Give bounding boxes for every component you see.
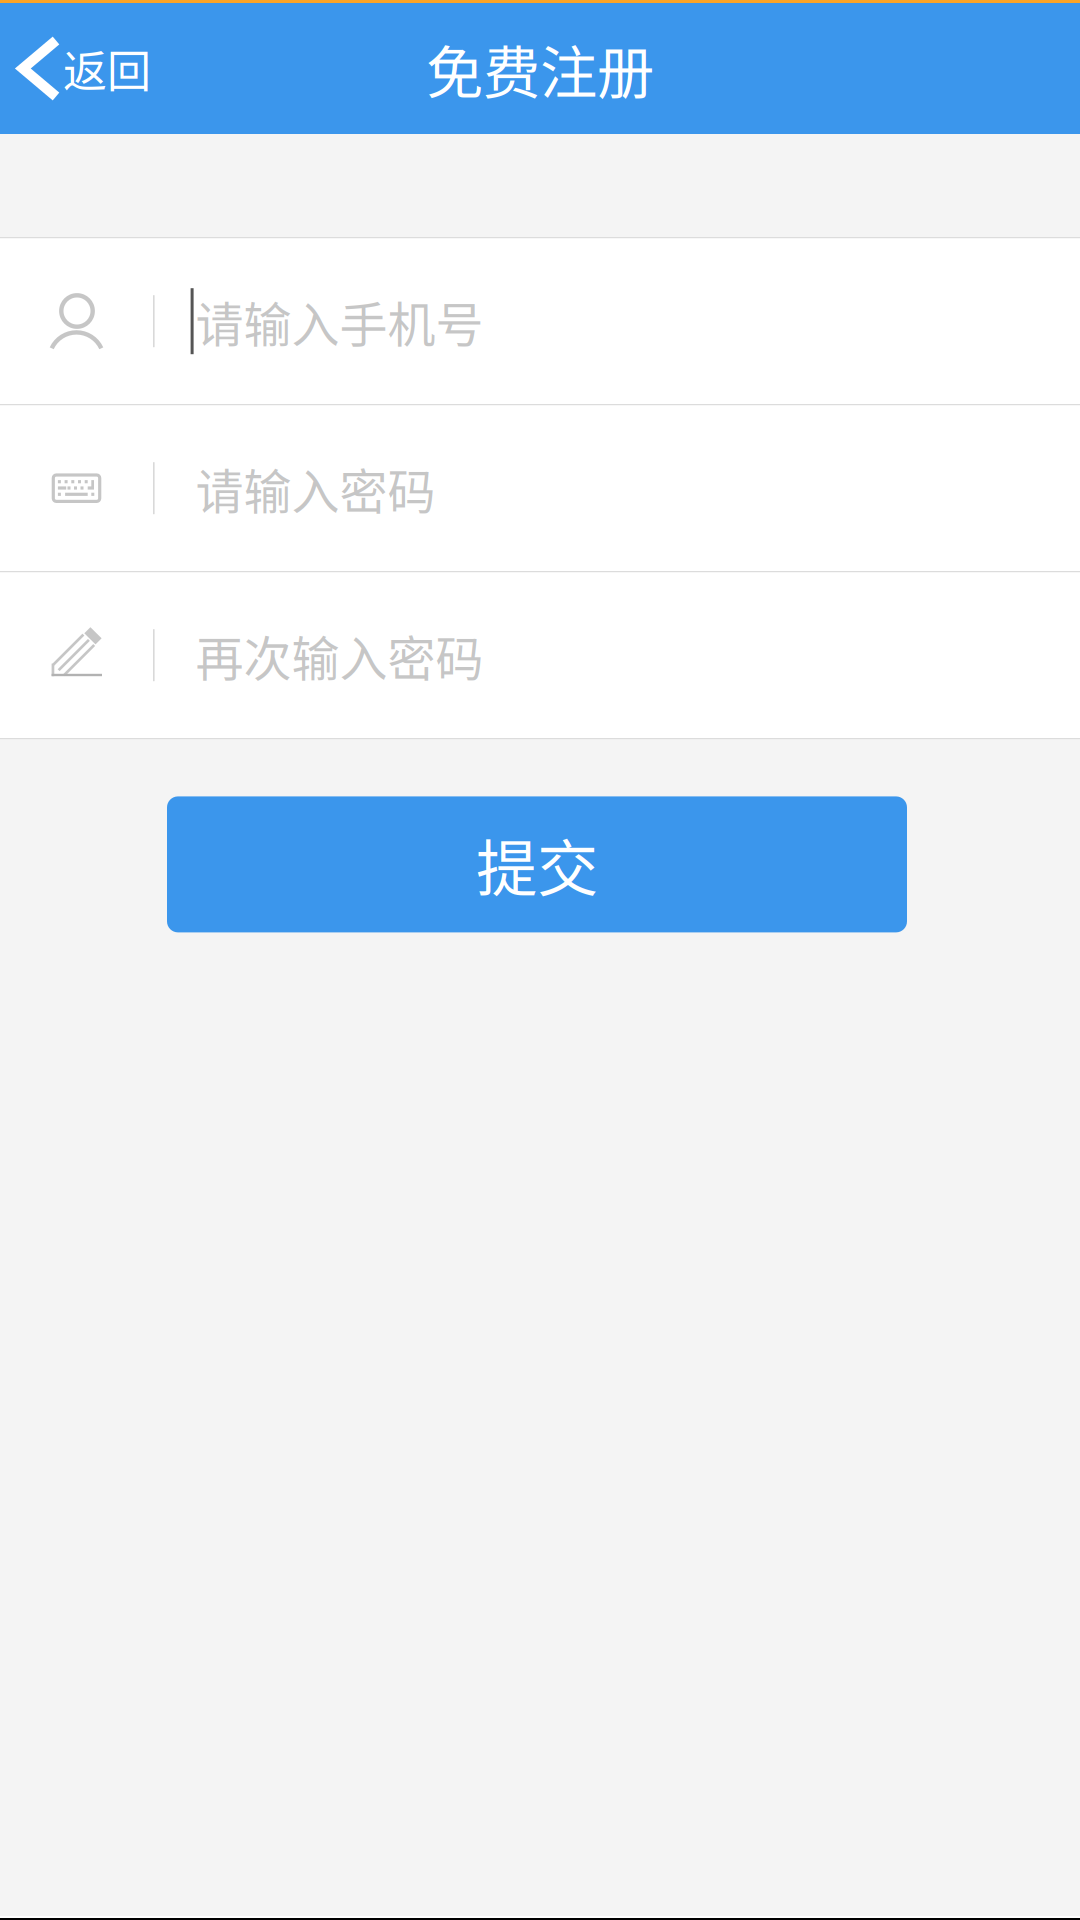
staticText: 免费注册 — [426, 27, 654, 110]
button[interactable]: 请输入手机号 — [0, 238, 1080, 404]
button[interactable]: 再次输入密码 — [0, 572, 1080, 738]
button[interactable]: 请输入密码 — [0, 405, 1080, 571]
staticText: 返回 — [63, 37, 151, 100]
staticText: 提交 — [476, 820, 598, 909]
staticText: 再次输入密码 — [196, 620, 484, 690]
staticText: 请输入手机号 — [196, 286, 484, 356]
staticText: 请输入密码 — [196, 453, 436, 523]
button[interactable]: 返回 — [0, 3, 173, 134]
button[interactable]: 提交 — [167, 796, 907, 932]
